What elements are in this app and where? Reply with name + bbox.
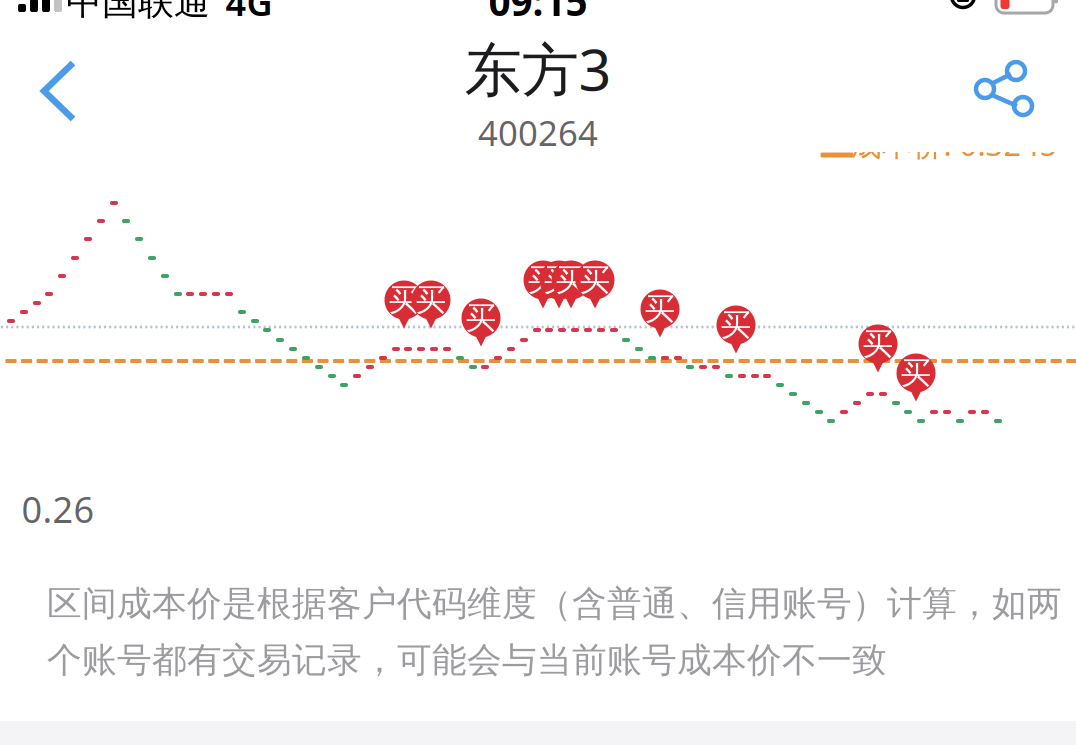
staticText: 买 [415, 281, 446, 319]
staticText: 买 [900, 354, 931, 392]
staticText: 买 [720, 306, 751, 344]
staticText: 400264 [478, 109, 598, 155]
staticText: 个账号都有交易记录，可能会与当前账号成本价不一致 [47, 639, 887, 682]
staticText: 中国联通 [66, 0, 210, 24]
staticText: 买 [527, 261, 558, 299]
staticText: 买 [862, 325, 893, 363]
staticText: 买 [388, 281, 419, 319]
button[interactable]: Back [12, 41, 104, 141]
staticText: 买 [644, 290, 675, 328]
staticText: 区间成本价是根据客户代码维度（含普通、信用账号）计算，如两 [47, 582, 1062, 625]
staticText: 买 [465, 299, 496, 337]
button[interactable]: Share [960, 46, 1048, 134]
staticText: 成本价: 0.3245 [850, 124, 1057, 164]
staticText: 买 [579, 261, 610, 299]
staticText: 0.26 [21, 485, 94, 533]
staticText: 东方3 [464, 30, 611, 106]
staticText: 买 [543, 261, 574, 299]
staticText: 买 [555, 261, 586, 299]
staticText: 09:15 [488, 0, 587, 27]
staticText: 4G [225, 0, 272, 26]
